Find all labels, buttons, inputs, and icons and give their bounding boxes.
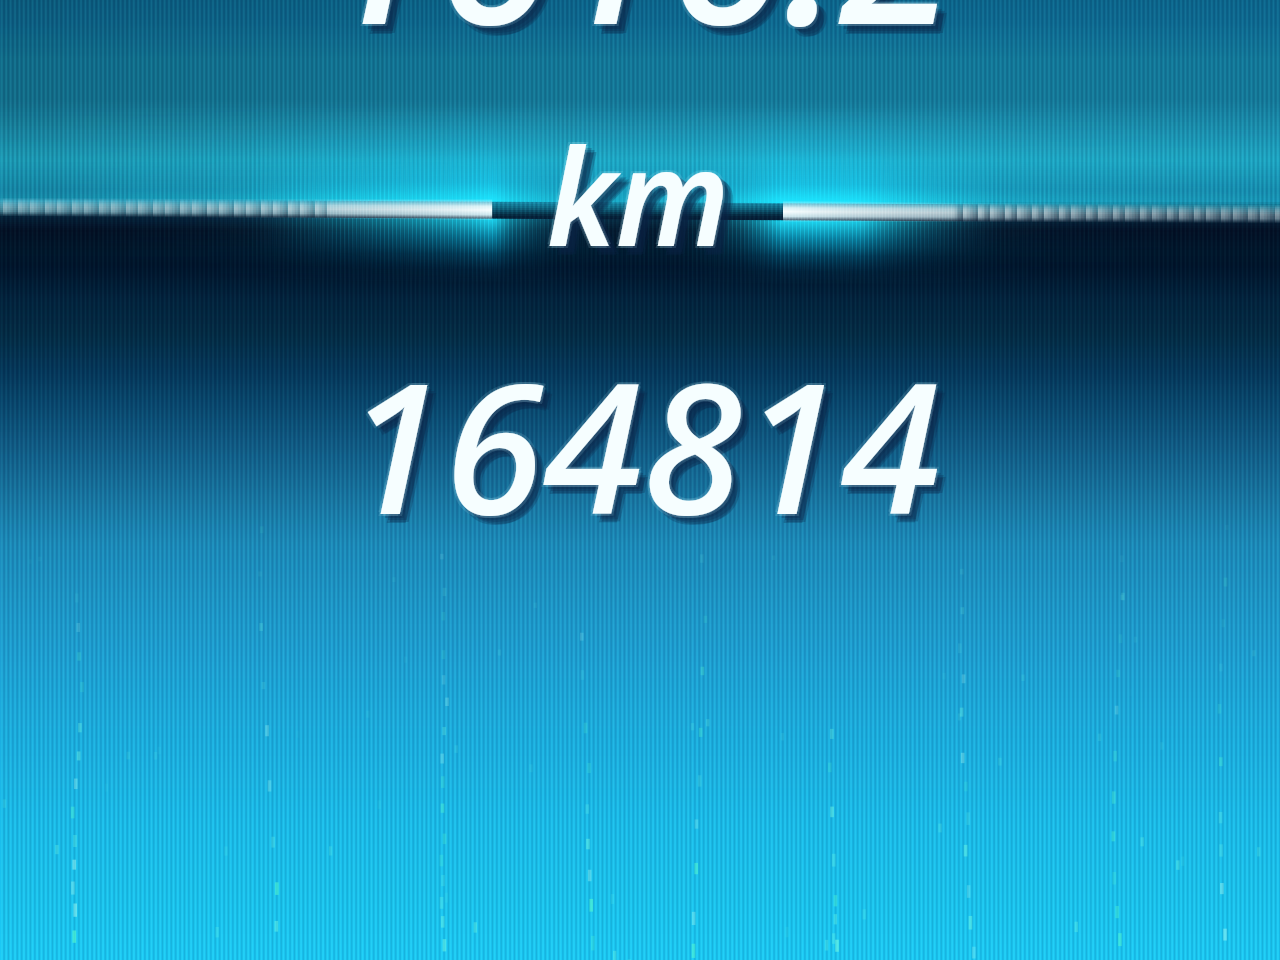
- staticText: 1616.2: [321, 0, 956, 86]
- staticText: 1616.2: [329, 0, 964, 93]
- staticText: km: [549, 105, 732, 288]
- staticText: km: [557, 111, 741, 294]
- staticText: 1616.2: [323, 0, 958, 88]
- staticText: km: [555, 109, 739, 292]
- staticText: 164814: [354, 330, 950, 575]
- staticText: 164814: [349, 326, 945, 571]
- staticText: km: [545, 105, 728, 288]
- staticText: 164814: [347, 324, 943, 569]
- staticText: 1616.2: [319, 0, 954, 84]
- staticText: 1616.2: [319, 0, 954, 88]
- staticText: 164814: [345, 322, 941, 567]
- staticText: 1616.2: [326, 0, 961, 91]
- staticText: 164814: [352, 328, 948, 573]
- staticText: km: [545, 101, 728, 284]
- staticText: 164814: [351, 331, 947, 576]
- staticText: 1616.2: [323, 0, 958, 84]
- staticText: km: [555, 112, 738, 295]
- staticText: 1616.2: [331, 0, 966, 95]
- button[interactable]: Trip and odometer display: [0, 0, 1280, 960]
- staticText: 1616.2: [328, 0, 963, 96]
- staticText: 164814: [347, 320, 943, 565]
- staticText: km: [547, 103, 730, 286]
- staticText: 164814: [343, 320, 939, 565]
- staticText: 164814: [343, 324, 939, 569]
- staticText: km: [549, 101, 732, 284]
- staticText: km: [553, 107, 736, 290]
